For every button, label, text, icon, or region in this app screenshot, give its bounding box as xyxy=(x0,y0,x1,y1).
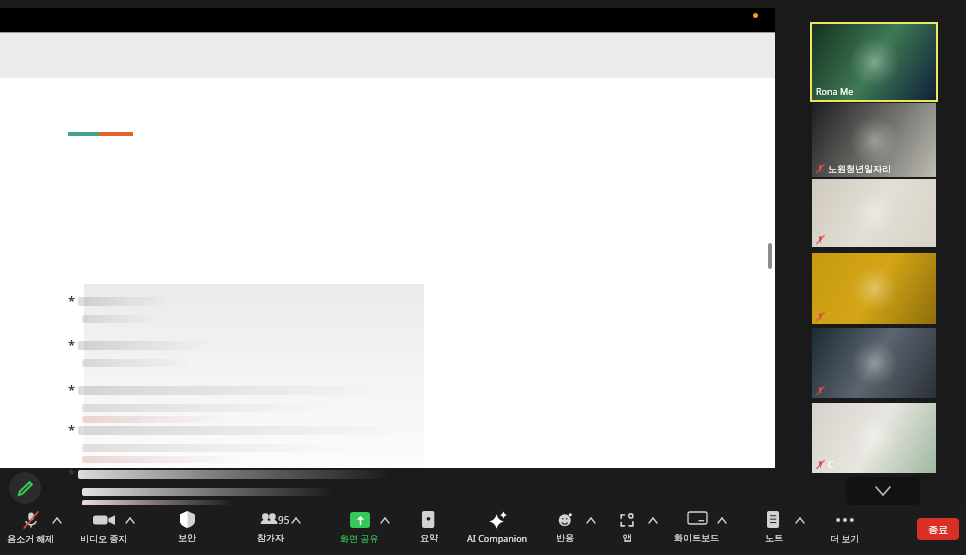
button[interactable]: 비디오 중지 xyxy=(72,507,136,553)
button[interactable]: Rona Me xyxy=(812,24,936,100)
button[interactable]: 종료 xyxy=(917,518,959,540)
staticText: 보안 xyxy=(178,532,196,543)
staticText: 반응 xyxy=(556,532,574,543)
button[interactable]: 주석 작성 xyxy=(9,472,41,504)
staticText: * xyxy=(68,336,76,354)
button[interactable]: 앱 xyxy=(595,507,659,553)
button[interactable]: 음소거 해제 xyxy=(0,507,63,553)
button[interactable]: 반응 xyxy=(533,507,597,553)
button[interactable] xyxy=(812,253,936,324)
staticText: * xyxy=(68,465,76,483)
staticText: Rona Me xyxy=(816,85,854,97)
button[interactable]: 보안 xyxy=(155,507,219,553)
staticText: 화이트보드 xyxy=(674,532,719,543)
staticText: 앱 xyxy=(623,532,632,543)
button[interactable]: 노트 xyxy=(742,507,806,553)
staticText: 노원청년일자리 xyxy=(828,163,891,174)
staticText: 비디오 중지 xyxy=(80,532,128,544)
button[interactable]: 화이트보드 xyxy=(664,507,728,553)
staticText: 노트 xyxy=(765,532,783,543)
staticText: C xyxy=(828,458,834,470)
button[interactable] xyxy=(812,179,936,247)
staticText: * xyxy=(68,381,76,399)
button[interactable]: 갤러리 더 보기 xyxy=(846,477,920,505)
staticText: 더 보기 xyxy=(830,532,860,544)
staticText: 요약 xyxy=(420,532,438,543)
button[interactable] xyxy=(812,328,936,398)
button[interactable]: 노원청년일자리 xyxy=(812,103,936,177)
staticText: 음소거 해제 xyxy=(7,532,55,544)
staticText: AI Companion xyxy=(467,532,528,544)
staticText: * xyxy=(68,292,76,310)
button[interactable]: 참가자 xyxy=(238,507,302,553)
button[interactable]: 요약 xyxy=(397,507,461,553)
button[interactable]: AI Companion xyxy=(465,507,529,553)
staticText: 종료 xyxy=(928,523,948,536)
staticText: 참가자 xyxy=(257,532,284,543)
button[interactable]: C xyxy=(812,403,936,473)
staticText: 화면 공유 xyxy=(340,532,379,544)
button[interactable]: 더 보기 xyxy=(813,507,877,553)
staticText: 95 xyxy=(278,513,290,527)
button[interactable]: 화면 공유 xyxy=(327,507,391,553)
staticText: * xyxy=(68,421,76,439)
